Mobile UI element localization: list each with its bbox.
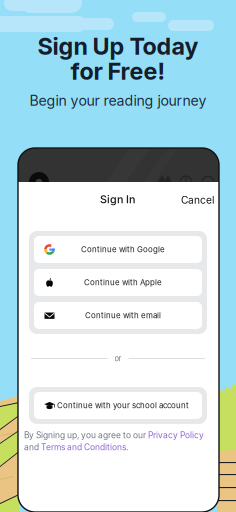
button[interactable]: Continue with email: [34, 302, 202, 329]
staticText: Continue with your school account: [57, 401, 189, 410]
staticText: for Free!: [70, 57, 165, 85]
staticText: Sign In: [100, 193, 135, 206]
staticText: Begin your reading journey: [29, 92, 206, 109]
staticText: Continue with Google: [81, 245, 165, 254]
staticText: Continue with email: [85, 311, 161, 320]
button[interactable]: Continue with Apple: [34, 269, 202, 296]
staticText: or: [114, 354, 121, 363]
staticText: Privacy Policy: [148, 430, 204, 440]
staticText: Terms and Conditions: [41, 442, 126, 452]
button[interactable]: Continue with Google: [34, 236, 202, 263]
staticText: and: [24, 442, 41, 452]
staticText: By Signing up, you agree to our: [24, 430, 148, 440]
staticText: .: [126, 442, 128, 452]
button[interactable]: Continue with your school account: [34, 392, 202, 419]
button[interactable]: Cancel: [181, 194, 214, 206]
staticText: Continue with Apple: [84, 278, 162, 287]
staticText: Cancel: [181, 194, 214, 206]
button[interactable]: Privacy Policy: [148, 430, 204, 440]
button[interactable]: Terms and Conditions: [41, 442, 126, 452]
staticText: Sign Up Today: [37, 32, 198, 60]
